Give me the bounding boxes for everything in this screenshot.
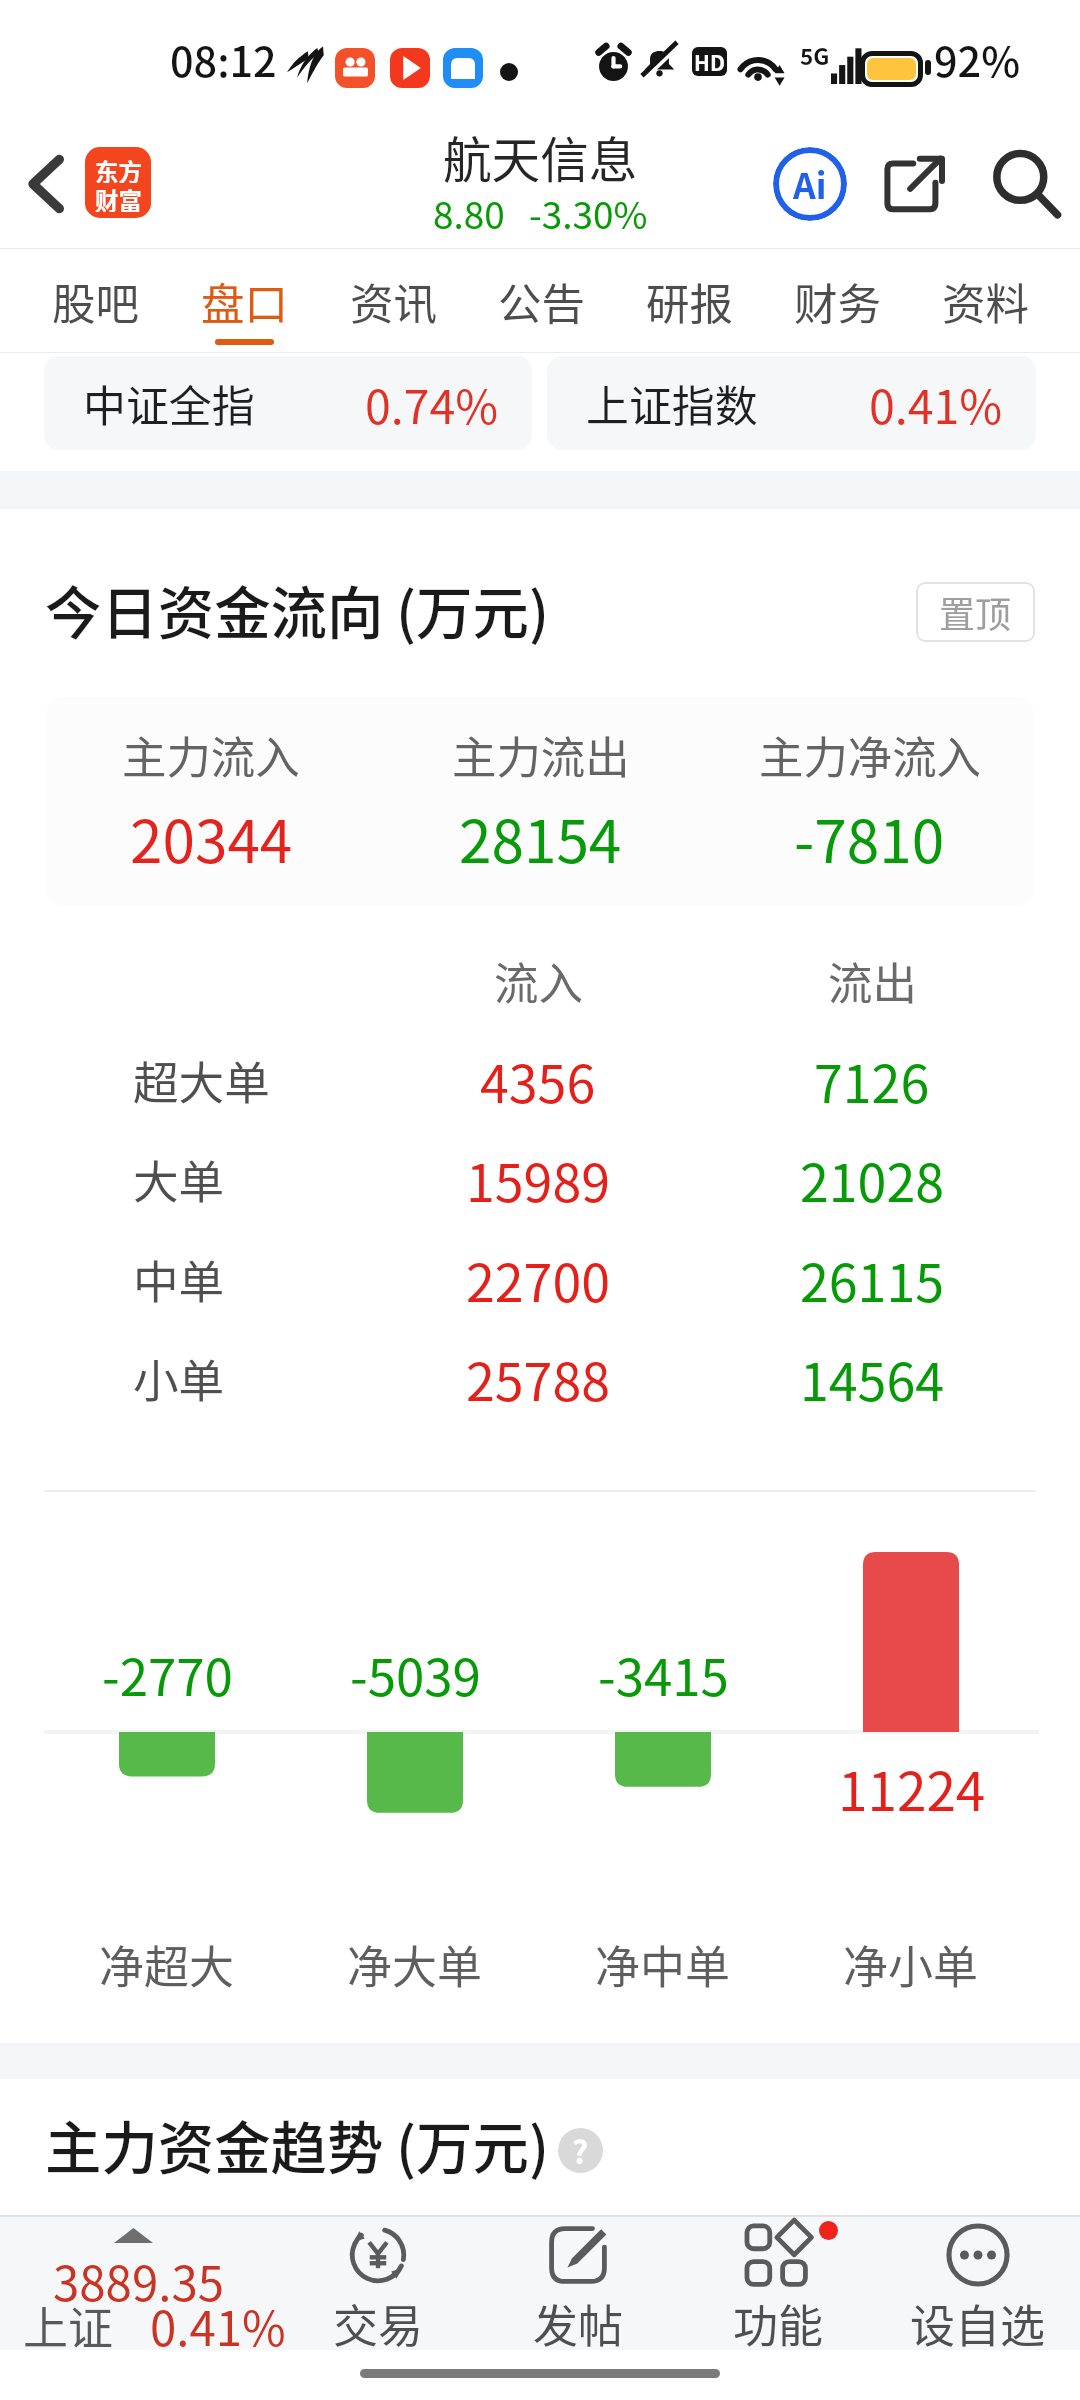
staticText: 盘口: [201, 270, 288, 333]
button[interactable]: 设自选: [878, 2217, 1078, 2350]
button[interactable]: Share: [867, 120, 963, 248]
staticText: 26115: [800, 1242, 944, 1317]
staticText: 财务: [794, 270, 881, 333]
staticText: 净小单: [843, 1932, 979, 1997]
staticText: 主力流入: [122, 722, 300, 786]
staticText: 净大单: [347, 1932, 483, 1997]
staticText: 东方: [95, 154, 142, 183]
button[interactable]: 资料: [911, 249, 1059, 352]
staticText: 交易: [333, 2291, 424, 2356]
button[interactable]: 股吧: [21, 249, 170, 352]
staticText: 超大单: [133, 1047, 270, 1113]
button[interactable]: 交易: [278, 2217, 478, 2350]
staticText: 22700: [466, 1242, 610, 1317]
button[interactable]: 财务: [763, 249, 911, 352]
staticText: 发帖: [533, 2291, 624, 2356]
button[interactable]: AI assistant: [762, 120, 858, 248]
staticText: 5G: [800, 39, 830, 72]
staticText: 主力净流入: [759, 722, 981, 786]
staticText: -2770: [102, 1637, 233, 1709]
button[interactable]: 中证全指: [44, 356, 532, 450]
button[interactable]: 东方: [85, 147, 151, 218]
staticText: 3889.35: [53, 2246, 224, 2315]
staticText: 公告: [498, 270, 585, 333]
staticText: 11224: [838, 1749, 986, 1821]
button[interactable]: Back: [6, 120, 84, 248]
staticText: 小单: [133, 1345, 225, 1411]
staticText: 28154: [459, 795, 622, 880]
staticText: 0.74%: [365, 370, 499, 437]
button[interactable]: 3889.35: [0, 2217, 278, 2350]
staticText: 功能: [733, 2291, 824, 2356]
staticText: -3415: [598, 1637, 729, 1709]
staticText: 主力流出: [452, 722, 630, 786]
staticText: 15989: [466, 1142, 610, 1217]
button[interactable]: 上证指数: [547, 356, 1036, 450]
staticText: 4356: [480, 1043, 596, 1118]
staticText: -3.30%: [529, 186, 648, 239]
staticText: 25788: [466, 1341, 610, 1416]
button[interactable]: Help: [558, 2128, 603, 2173]
staticText: 08:12: [170, 29, 277, 89]
staticText: 资料: [942, 270, 1029, 333]
staticText: 中单: [133, 1246, 225, 1312]
staticText: 14564: [800, 1341, 944, 1416]
staticText: 上证指数: [586, 372, 758, 434]
staticText: 20344: [130, 795, 293, 880]
staticText: 21028: [800, 1142, 944, 1217]
button[interactable]: 盘口: [170, 249, 319, 352]
staticText: -5039: [350, 1637, 481, 1709]
staticText: 92%: [934, 29, 1021, 89]
staticText: 净超大: [99, 1932, 235, 1997]
button[interactable]: 研报: [615, 249, 763, 352]
staticText: 财富: [95, 183, 142, 212]
button[interactable]: 发帖: [478, 2217, 678, 2350]
button[interactable]: 置顶: [916, 582, 1035, 642]
staticText: 主力资金趋势 (万元): [45, 2104, 549, 2186]
staticText: -7810: [794, 795, 945, 880]
staticText: 7126: [814, 1043, 930, 1118]
staticText: 上证: [23, 2293, 114, 2358]
staticText: 流出: [828, 948, 917, 1012]
staticText: 股吧: [52, 270, 139, 333]
staticText: Ai: [793, 158, 827, 209]
staticText: 大单: [133, 1146, 225, 1212]
button[interactable]: Search: [978, 120, 1074, 248]
button[interactable]: 公告: [467, 249, 615, 352]
staticText: 中证全指: [83, 372, 255, 434]
staticText: 资讯: [350, 270, 437, 333]
staticText: 8.80: [433, 186, 505, 239]
staticText: 0.41%: [150, 2291, 286, 2360]
staticText: 流入: [494, 948, 583, 1012]
staticText: ?: [572, 2128, 589, 2172]
button[interactable]: 资讯: [319, 249, 467, 352]
button[interactable]: 功能: [678, 2217, 878, 2350]
staticText: 置顶: [939, 586, 1012, 638]
staticText: 净中单: [595, 1932, 731, 1997]
staticText: HD: [694, 47, 725, 76]
staticText: 航天信息: [443, 122, 638, 192]
staticText: 研报: [646, 270, 733, 333]
staticText: 设自选: [910, 2291, 1046, 2356]
staticText: 0.41%: [869, 370, 1003, 437]
staticText: 今日资金流向 (万元): [45, 569, 549, 651]
